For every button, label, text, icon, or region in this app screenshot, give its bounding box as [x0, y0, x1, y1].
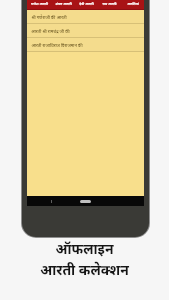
staticText: श्री गणेशजी की आरती: [31, 14, 67, 20]
button[interactable]: गणेश आरती: [27, 0, 51, 9]
button[interactable]: शंकर आरती: [51, 0, 75, 9]
button[interactable]: आरती श्री रामचंद्र जी की: [27, 24, 144, 38]
button[interactable]: श्री गणेशजी की आरती: [27, 10, 144, 24]
staticText: आरतियां: [127, 1, 139, 6]
button[interactable]: आरती राजाधिराज विराजमान की: [27, 38, 144, 52]
staticText: राम आरती: [102, 1, 117, 6]
staticText: शंकर आरती: [55, 1, 72, 6]
staticText: ऑफलाइन: [55, 239, 114, 258]
staticText: आरती कलेक्शन: [40, 260, 129, 279]
staticText: गणेश आरती: [31, 1, 48, 6]
button[interactable]: Home: [80, 200, 91, 203]
button[interactable]: राम आरती: [98, 0, 121, 9]
button[interactable]: देवी आरती: [75, 0, 98, 9]
button[interactable]: आरतियां: [121, 0, 144, 9]
staticText: आरती श्री रामचंद्र जी की: [31, 28, 70, 34]
staticText: आरती राजाधिराज विराजमान की: [31, 42, 83, 48]
staticText: देवी आरती: [79, 1, 94, 6]
